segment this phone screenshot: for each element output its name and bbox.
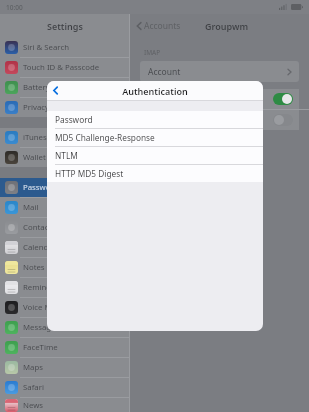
button[interactable]: Safari	[0, 378, 129, 397]
staticText: Settings	[47, 20, 83, 32]
button[interactable]: Back	[47, 82, 64, 99]
staticText: Privacy	[23, 102, 50, 113]
button[interactable]: Messages	[0, 318, 129, 337]
button[interactable]: Maps	[0, 358, 129, 377]
staticText: Authentication	[122, 85, 188, 97]
staticText: Account	[148, 66, 181, 78]
button[interactable]: Accounts	[134, 18, 183, 34]
button[interactable]: HTTP MD5 Digest	[47, 165, 263, 182]
button[interactable]: Battery	[0, 78, 129, 97]
button[interactable]: Passwords & Accounts	[0, 178, 129, 197]
staticText: Mail	[23, 202, 39, 213]
staticText: Reminders	[23, 282, 63, 293]
staticText: Groupwm	[205, 20, 249, 32]
staticText: FaceTime	[23, 342, 58, 353]
staticText: NTLM	[55, 150, 78, 161]
staticText: Touch ID & Passcode	[23, 62, 100, 73]
button[interactable]: Password	[47, 111, 263, 128]
button[interactable]: Toggle on	[140, 89, 299, 109]
button[interactable]: Calendar	[0, 238, 129, 257]
staticText: iTunes & App Store	[23, 132, 93, 143]
staticText: IMAP	[144, 48, 161, 57]
staticText: Contacts	[23, 222, 55, 233]
button[interactable]: MD5 Challenge-Response	[47, 129, 263, 146]
button[interactable]: iTunes & App Store	[0, 128, 129, 147]
staticText: Messages	[23, 322, 60, 333]
staticText: HTTP MD5 Digest	[55, 168, 124, 179]
button[interactable]: NTLM	[47, 147, 263, 164]
staticText: 10:00	[6, 3, 23, 12]
button[interactable]: Account	[140, 61, 299, 82]
button[interactable]: Privacy	[0, 98, 129, 117]
button[interactable]: News	[0, 398, 129, 412]
staticText: Maps	[23, 362, 43, 373]
button[interactable]: Toggle off	[140, 110, 299, 130]
staticText: Accounts	[144, 20, 181, 32]
staticText: Wallet & Apple Pay	[23, 152, 92, 163]
staticText: MD5 Challenge-Response	[55, 132, 155, 143]
staticText: Password	[55, 114, 93, 125]
staticText: Siri & Search	[23, 42, 69, 53]
button[interactable]: FaceTime	[0, 338, 129, 357]
button[interactable]: Voice Memos	[0, 298, 129, 317]
button[interactable]: Wallet & Apple Pay	[0, 148, 129, 167]
staticText: Passwords & Accounts	[23, 182, 106, 193]
staticText: Battery	[23, 82, 50, 93]
staticText: Safari	[23, 382, 44, 393]
button[interactable]: Siri & Search	[0, 38, 129, 57]
button[interactable]: Contacts	[0, 218, 129, 237]
staticText: Voice Memos	[23, 302, 72, 313]
button[interactable]: Touch ID & Passcode	[0, 58, 129, 77]
button[interactable]: Notes	[0, 258, 129, 277]
staticText: News	[23, 400, 44, 411]
button[interactable]: Reminders	[0, 278, 129, 297]
button[interactable]: Mail	[0, 198, 129, 217]
staticText: Notes	[23, 262, 45, 273]
staticText: Calendar	[23, 242, 56, 253]
